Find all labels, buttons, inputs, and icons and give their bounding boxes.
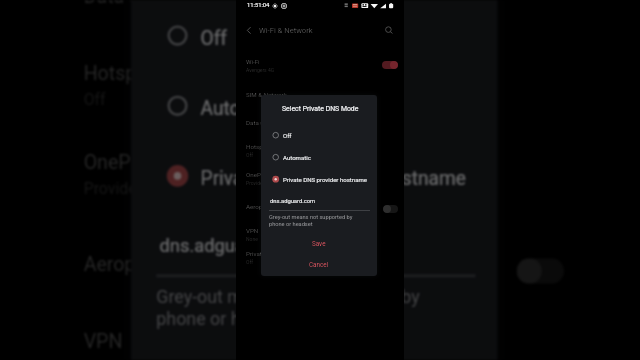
staticText: Data usage xyxy=(84,0,185,6)
staticText: Provides... xyxy=(246,180,270,186)
staticText: Provides... xyxy=(84,178,159,198)
staticText: Private DNS provider hostname xyxy=(283,176,367,183)
button[interactable]: Private DNS provider hostname xyxy=(261,173,377,189)
button[interactable]: Automatic xyxy=(261,151,377,167)
button[interactable]: Data usage xyxy=(236,119,404,133)
staticText: Avengers 4G xyxy=(246,67,275,73)
button[interactable]: dns.adguard.com xyxy=(261,198,377,214)
staticText: Hotspot & tethering xyxy=(246,143,300,150)
staticText: Select Private DNS Mode xyxy=(282,105,359,113)
staticText: Hotspot & tethering xyxy=(84,60,254,83)
button[interactable]: Wi-Fi xyxy=(236,58,404,78)
staticText: Data usage xyxy=(246,119,278,126)
staticText: dns.adguard.com xyxy=(270,198,316,205)
staticText: OnePlus Switch xyxy=(84,150,223,172)
staticText: Automatic xyxy=(283,154,311,161)
staticText: Off xyxy=(283,132,292,139)
staticText: Save xyxy=(312,240,326,247)
button[interactable]: Cancel xyxy=(261,255,377,273)
staticText: Off xyxy=(84,89,106,108)
button[interactable]: Search xyxy=(380,21,398,39)
staticText: Automatic xyxy=(201,96,289,118)
staticText: Off xyxy=(246,259,253,265)
staticText: 11:51:04 xyxy=(247,2,270,9)
staticText: Cancel xyxy=(309,261,329,268)
staticText: VPN xyxy=(84,328,125,351)
staticText: Grey-out means not supported by xyxy=(269,214,353,221)
button[interactable]: Back xyxy=(241,21,259,39)
staticText: Wi-Fi & Network xyxy=(259,26,313,35)
button[interactable]: Off xyxy=(261,129,377,145)
staticText: Off xyxy=(201,25,229,48)
staticText: Wi-Fi xyxy=(246,58,260,65)
button[interactable]: Off xyxy=(131,16,498,67)
button[interactable]: OnePlus Switch xyxy=(52,150,583,214)
staticText: Grey-out means not supported by xyxy=(156,287,422,309)
staticText: Off xyxy=(246,152,253,158)
button[interactable]: dns.adguard.com xyxy=(131,236,498,287)
button[interactable]: VPN xyxy=(52,328,583,360)
button[interactable]: Data usage xyxy=(52,0,583,29)
staticText: phone or headset xyxy=(156,309,295,332)
staticText: Private DNS provider hostname xyxy=(201,166,466,188)
staticText: dns.adguard.com xyxy=(159,236,305,258)
button[interactable]: OnePlus Switch xyxy=(236,171,404,191)
button[interactable]: Aeroplane mode toggle xyxy=(383,205,398,213)
button[interactable]: Hotspot & tethering xyxy=(236,143,404,163)
button[interactable]: Aeroplane mode xyxy=(52,252,583,297)
staticText: None xyxy=(246,236,258,242)
staticText: phone or headset xyxy=(269,221,313,228)
button[interactable]: SIM & Network xyxy=(236,91,404,105)
button[interactable]: Automatic xyxy=(131,86,498,137)
staticText: Aeroplane mode xyxy=(84,252,229,274)
staticText: Private DNS xyxy=(246,250,279,257)
button[interactable]: Save xyxy=(261,234,377,252)
button[interactable]: Private DNS xyxy=(236,250,404,270)
staticText: SIM & Network xyxy=(246,91,287,98)
staticText: VPN xyxy=(246,227,259,234)
staticText: OnePlus Switch xyxy=(246,171,290,178)
button[interactable]: Private DNS provider hostname xyxy=(131,156,498,207)
button[interactable]: Hotspot & tethering xyxy=(52,60,583,124)
button[interactable]: Wi-Fi toggle xyxy=(382,61,398,69)
button[interactable]: VPN xyxy=(236,227,404,247)
button[interactable]: Aeroplane mode toggle xyxy=(517,258,564,284)
button[interactable]: Aeroplane mode xyxy=(236,203,404,217)
staticText: Aeroplane mode xyxy=(246,203,292,210)
button[interactable]: Save xyxy=(131,351,498,360)
